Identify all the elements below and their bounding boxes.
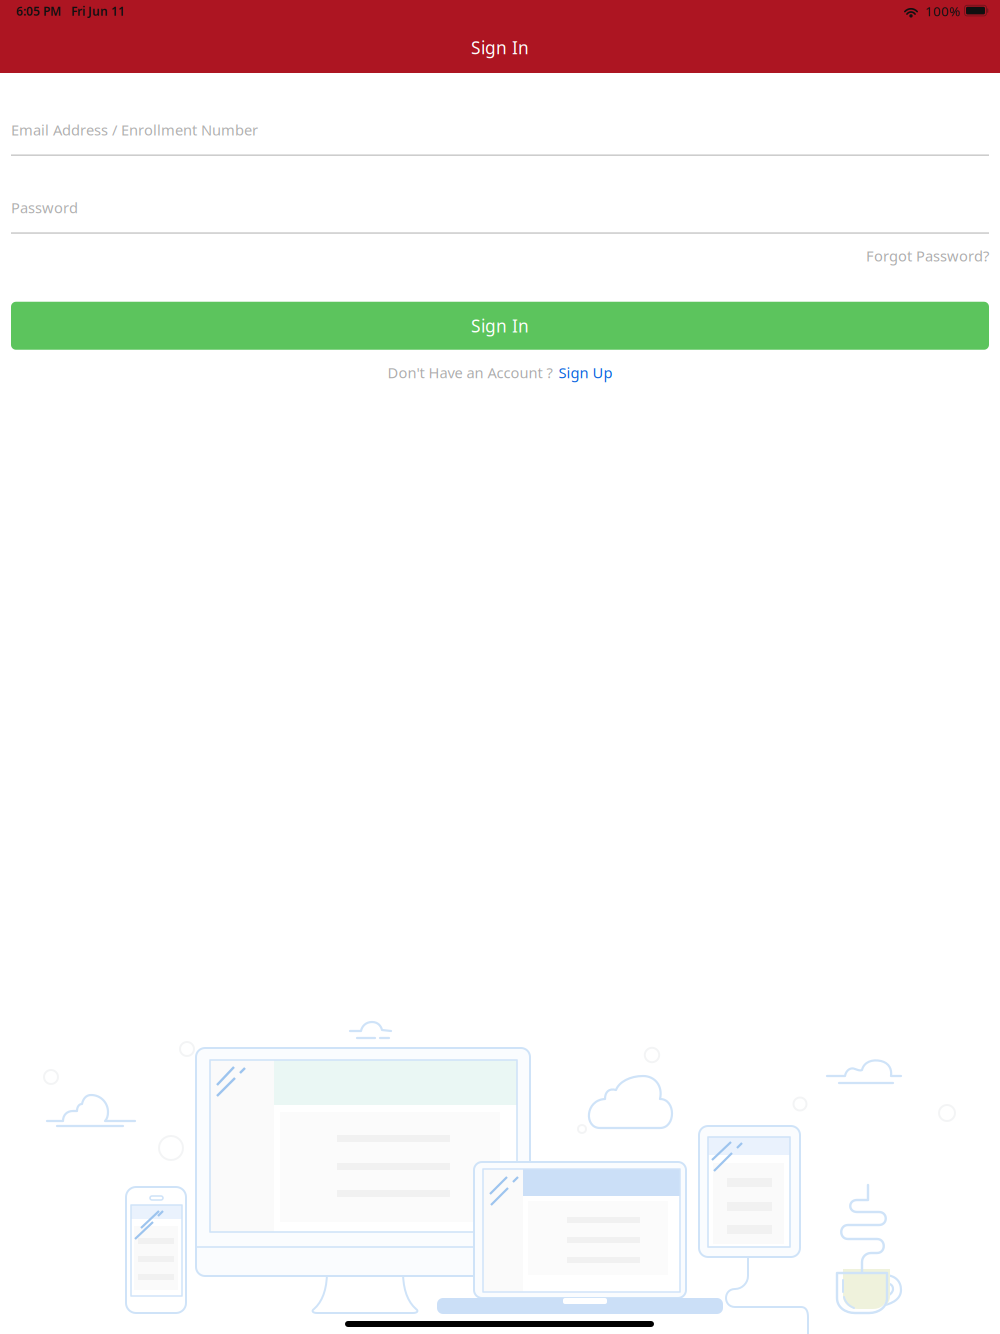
staticText: Don't Have an Account ? [387,363,552,382]
staticText: 6:05 PM [16,3,61,19]
staticText: Fri Jun 11 [71,3,125,19]
staticText: Email Address / Enrollment Number [11,120,258,139]
staticText: Sign In [471,314,529,337]
button[interactable]: Password [11,198,989,234]
staticText: Sign Up [558,363,612,382]
button[interactable]: Email Address / Enrollment Number [11,120,989,156]
staticText: Sign In [471,36,529,59]
button[interactable]: Sign Up [558,363,612,382]
staticText: Forgot Password? [866,246,989,265]
button[interactable]: Sign In [11,302,989,350]
staticText: 100% [925,2,960,20]
button[interactable]: Forgot Password? [11,245,989,267]
staticText: Password [11,198,78,217]
